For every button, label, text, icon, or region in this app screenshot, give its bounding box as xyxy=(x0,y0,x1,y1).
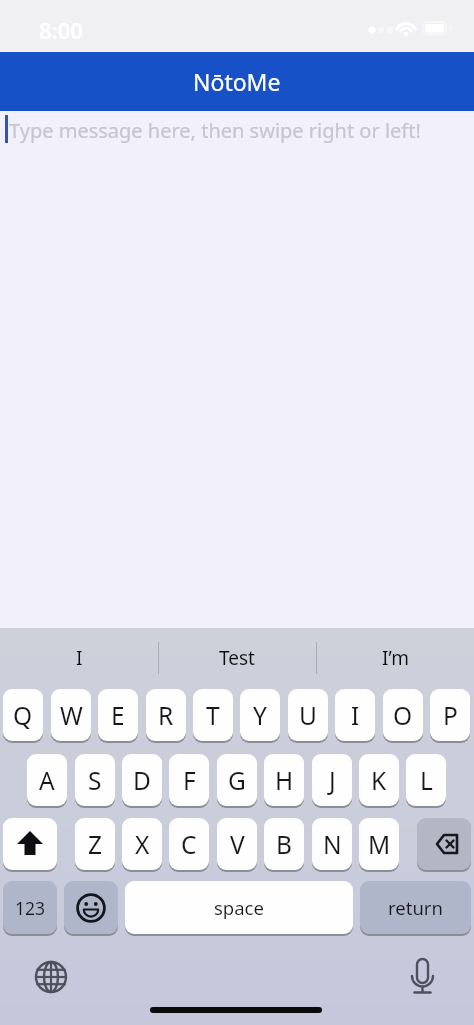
button[interactable]: N xyxy=(312,818,352,870)
button[interactable]: I’m xyxy=(316,628,474,688)
button[interactable]: L xyxy=(406,754,446,806)
staticText: NōtoMe xyxy=(193,66,281,97)
staticText: G xyxy=(228,764,246,797)
button[interactable]: K xyxy=(359,754,399,806)
button[interactable]: E xyxy=(98,689,138,741)
staticText: 123 xyxy=(15,896,46,920)
staticText: F xyxy=(183,764,196,797)
staticText: Q xyxy=(13,699,33,732)
staticText: C xyxy=(181,828,197,861)
staticText: V xyxy=(230,828,245,861)
button[interactable]: A xyxy=(27,754,67,806)
button[interactable] xyxy=(28,954,74,1000)
button[interactable]: U xyxy=(288,689,328,741)
button[interactable]: 123 xyxy=(3,881,57,934)
staticText: U xyxy=(299,699,317,732)
button[interactable]: I xyxy=(0,628,158,688)
button[interactable]: P xyxy=(430,689,470,741)
button[interactable]: O xyxy=(383,689,423,741)
button[interactable]: S xyxy=(75,754,115,806)
button[interactable] xyxy=(399,950,446,1000)
staticText: R xyxy=(158,699,174,732)
staticText: D xyxy=(133,764,151,797)
button[interactable]: R xyxy=(146,689,186,741)
button[interactable]: Q xyxy=(3,689,43,741)
button[interactable]: return xyxy=(360,881,471,934)
button[interactable]: Z xyxy=(75,818,115,870)
button[interactable]: Test xyxy=(158,628,316,688)
staticText: Y xyxy=(253,699,267,732)
staticText: X xyxy=(135,828,150,861)
staticText: 8:00 xyxy=(39,15,83,45)
button[interactable] xyxy=(417,818,471,870)
staticText: N xyxy=(323,828,342,861)
button[interactable] xyxy=(64,881,118,934)
button[interactable]: H xyxy=(264,754,304,806)
button[interactable]: C xyxy=(169,818,209,870)
button[interactable]: space xyxy=(125,881,353,934)
staticText: M xyxy=(368,828,391,861)
button[interactable]: M xyxy=(359,818,399,870)
button[interactable]: Y xyxy=(240,689,280,741)
staticText: Test xyxy=(219,645,255,671)
staticText: H xyxy=(275,764,294,797)
staticText: T xyxy=(206,699,220,732)
staticText: J xyxy=(329,764,336,797)
button[interactable]: G xyxy=(217,754,257,806)
button[interactable]: T xyxy=(193,689,233,741)
staticText: O xyxy=(393,699,413,732)
button[interactable] xyxy=(0,111,474,157)
button[interactable]: F xyxy=(169,754,209,806)
staticText: I xyxy=(76,645,83,671)
button[interactable]: I xyxy=(335,689,375,741)
button[interactable]: J xyxy=(312,754,352,806)
button[interactable]: X xyxy=(122,818,162,870)
button[interactable]: D xyxy=(122,754,162,806)
staticText: A xyxy=(39,764,55,797)
staticText: I’m xyxy=(382,645,409,671)
staticText: K xyxy=(371,764,387,797)
staticText: I xyxy=(351,699,360,732)
button[interactable] xyxy=(3,818,57,870)
staticText: Z xyxy=(88,828,103,861)
staticText: Type message here, then swipe right or l… xyxy=(9,117,421,144)
staticText: W xyxy=(60,699,83,732)
staticText: S xyxy=(88,764,102,797)
staticText: E xyxy=(111,699,125,732)
button[interactable]: V xyxy=(217,818,257,870)
staticText: B xyxy=(276,828,292,861)
staticText: space xyxy=(214,895,264,920)
staticText: P xyxy=(443,699,458,732)
staticText: L xyxy=(420,764,433,797)
staticText: return xyxy=(388,895,443,920)
button[interactable]: B xyxy=(264,818,304,870)
button[interactable]: W xyxy=(51,689,91,741)
